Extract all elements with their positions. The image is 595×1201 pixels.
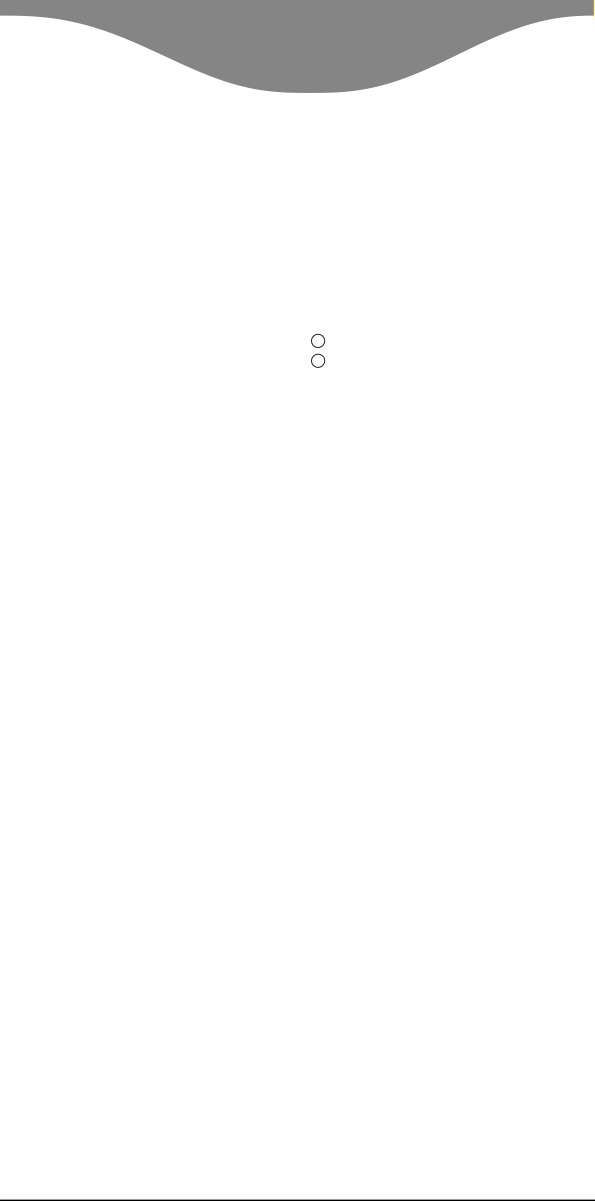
- button[interactable]: More options: [311, 334, 325, 367]
